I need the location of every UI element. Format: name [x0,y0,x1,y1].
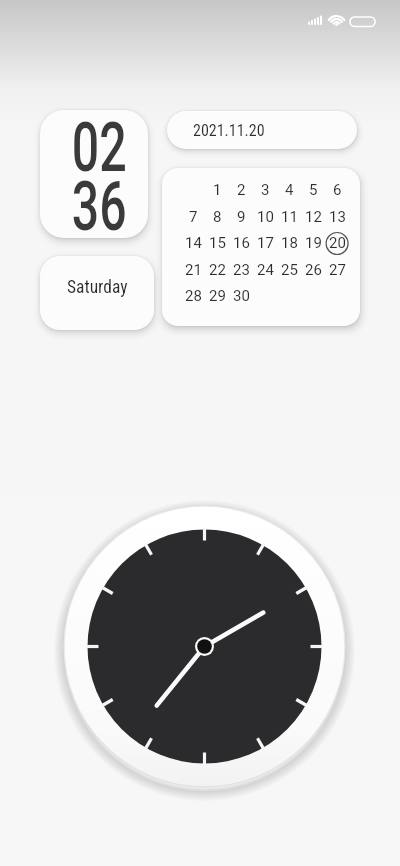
staticText: 15 [209,234,226,252]
staticText: 26 [305,261,322,279]
staticText: 14 [185,234,202,252]
staticText: 24 [257,261,274,279]
staticText: 30 [233,287,250,305]
staticText: 25 [281,261,298,279]
staticText: 2021.11.20 [193,121,265,140]
staticText: 19 [305,234,322,252]
staticText: 9 [237,208,246,226]
staticText: 7 [189,208,198,226]
staticText: 4 [285,181,294,199]
staticText: 12 [305,208,322,226]
staticText: 17 [257,234,274,252]
button[interactable]: 1 [162,168,360,326]
staticText: 29 [209,287,226,305]
staticText: 22 [209,261,226,279]
staticText: 16 [233,234,250,252]
staticText: 11 [281,208,298,226]
staticText: 28 [185,287,202,305]
staticText: 1 [213,181,222,199]
staticText: 8 [213,208,222,226]
staticText: Saturday [67,277,128,298]
staticText: 18 [281,234,298,252]
button[interactable]: 02 [40,110,148,238]
staticText: 20 [329,234,346,252]
staticText: 36 [72,166,127,238]
button[interactable] [63,505,346,788]
staticText: 23 [233,261,250,279]
staticText: 5 [309,181,318,199]
staticText: 10 [257,208,274,226]
staticText: 2 [237,181,246,199]
staticText: 13 [329,208,346,226]
button[interactable]: Saturday [40,256,154,330]
staticText: 6 [333,181,342,199]
staticText: 02 [72,110,127,188]
staticText: 27 [329,261,346,279]
staticText: 3 [261,181,270,199]
button[interactable]: 2021.11.20 [167,111,357,149]
staticText: 21 [185,261,202,279]
